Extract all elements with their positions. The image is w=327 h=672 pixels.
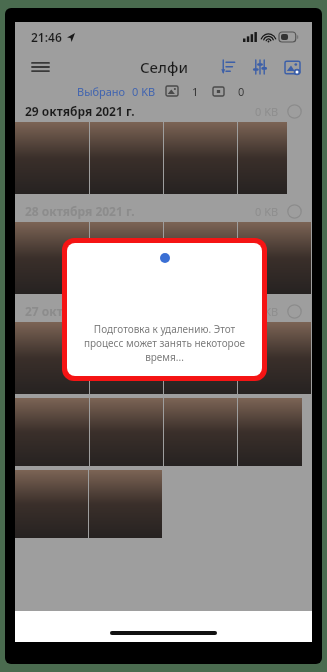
staticText: Выбрано [77,84,126,99]
button[interactable]: View [280,55,304,79]
button[interactable] [89,470,162,538]
staticText: 1 [192,84,199,99]
staticText: 28 октября 2021 г. [25,203,135,219]
staticText: Селфи [140,57,188,77]
button[interactable]: 27 октября 2021 г. [25,300,302,322]
button[interactable] [238,122,287,194]
button[interactable] [90,122,163,194]
button[interactable] [15,470,88,538]
button[interactable] [15,222,89,294]
staticText: 0 [238,84,245,99]
button[interactable] [164,122,237,194]
button[interactable] [15,322,89,394]
staticText: 0 KB [132,84,156,99]
button[interactable] [90,322,163,394]
staticText: 27 октября 2021 г. [25,303,135,319]
staticText: 0 KB [255,304,279,319]
staticText: 0 KB [255,204,279,219]
button[interactable]: Menu [25,52,55,82]
button[interactable]: 29 октября 2021 г. [25,100,302,122]
staticText: 0 KB [255,104,279,119]
staticText: 21:46 [31,29,62,45]
button[interactable] [15,398,89,466]
button[interactable]: 28 октября 2021 г. [25,200,302,222]
button[interactable] [90,398,163,466]
button[interactable] [15,122,89,194]
staticText: Подготовка к удалению. Этот процесс може… [79,322,250,364]
button[interactable]: More [188,613,212,637]
button[interactable] [238,222,311,294]
button[interactable]: Filter [248,55,272,79]
button[interactable] [238,322,311,394]
button[interactable]: Sort [216,55,240,79]
button[interactable] [238,398,302,466]
button[interactable]: Quality slider [55,614,178,636]
button[interactable] [164,398,237,466]
button[interactable] [164,322,237,394]
staticText: 29 октября 2021 г. [25,103,135,119]
button[interactable] [90,222,163,294]
button[interactable] [164,222,237,294]
